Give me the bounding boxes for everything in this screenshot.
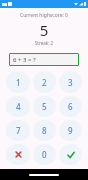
- staticText: 1: [16, 77, 21, 88]
- button[interactable]: 9: [59, 120, 82, 141]
- staticText: Streak: 2: [0, 40, 88, 46]
- staticText: 6: [68, 101, 73, 112]
- button[interactable]: 7: [6, 120, 30, 141]
- staticText: 5: [0, 20, 88, 40]
- staticText: 2: [42, 77, 47, 88]
- staticText: 6 + 3 = ?: [13, 56, 36, 64]
- button[interactable]: 6: [59, 96, 82, 117]
- staticText: 4: [16, 101, 21, 112]
- button[interactable]: 2: [33, 71, 56, 93]
- button[interactable]: 0: [33, 144, 56, 165]
- button[interactable]: 5: [33, 96, 56, 117]
- button[interactable]: 8: [33, 120, 56, 141]
- button[interactable]: 6 + 3 = ?: [9, 53, 79, 66]
- button[interactable]: Submit answer: [59, 144, 82, 165]
- staticText: 8: [42, 125, 47, 136]
- button[interactable]: 4: [6, 96, 30, 117]
- staticText: Current highscore: 0: [0, 12, 88, 19]
- button[interactable]: 1: [6, 71, 30, 93]
- staticText: 3: [68, 77, 73, 88]
- staticText: 0: [42, 149, 47, 160]
- staticText: 9: [68, 125, 73, 136]
- staticText: 7: [16, 125, 21, 136]
- staticText: 5: [42, 101, 47, 112]
- button[interactable]: Clear: [6, 144, 30, 165]
- button[interactable]: 3: [59, 71, 82, 93]
